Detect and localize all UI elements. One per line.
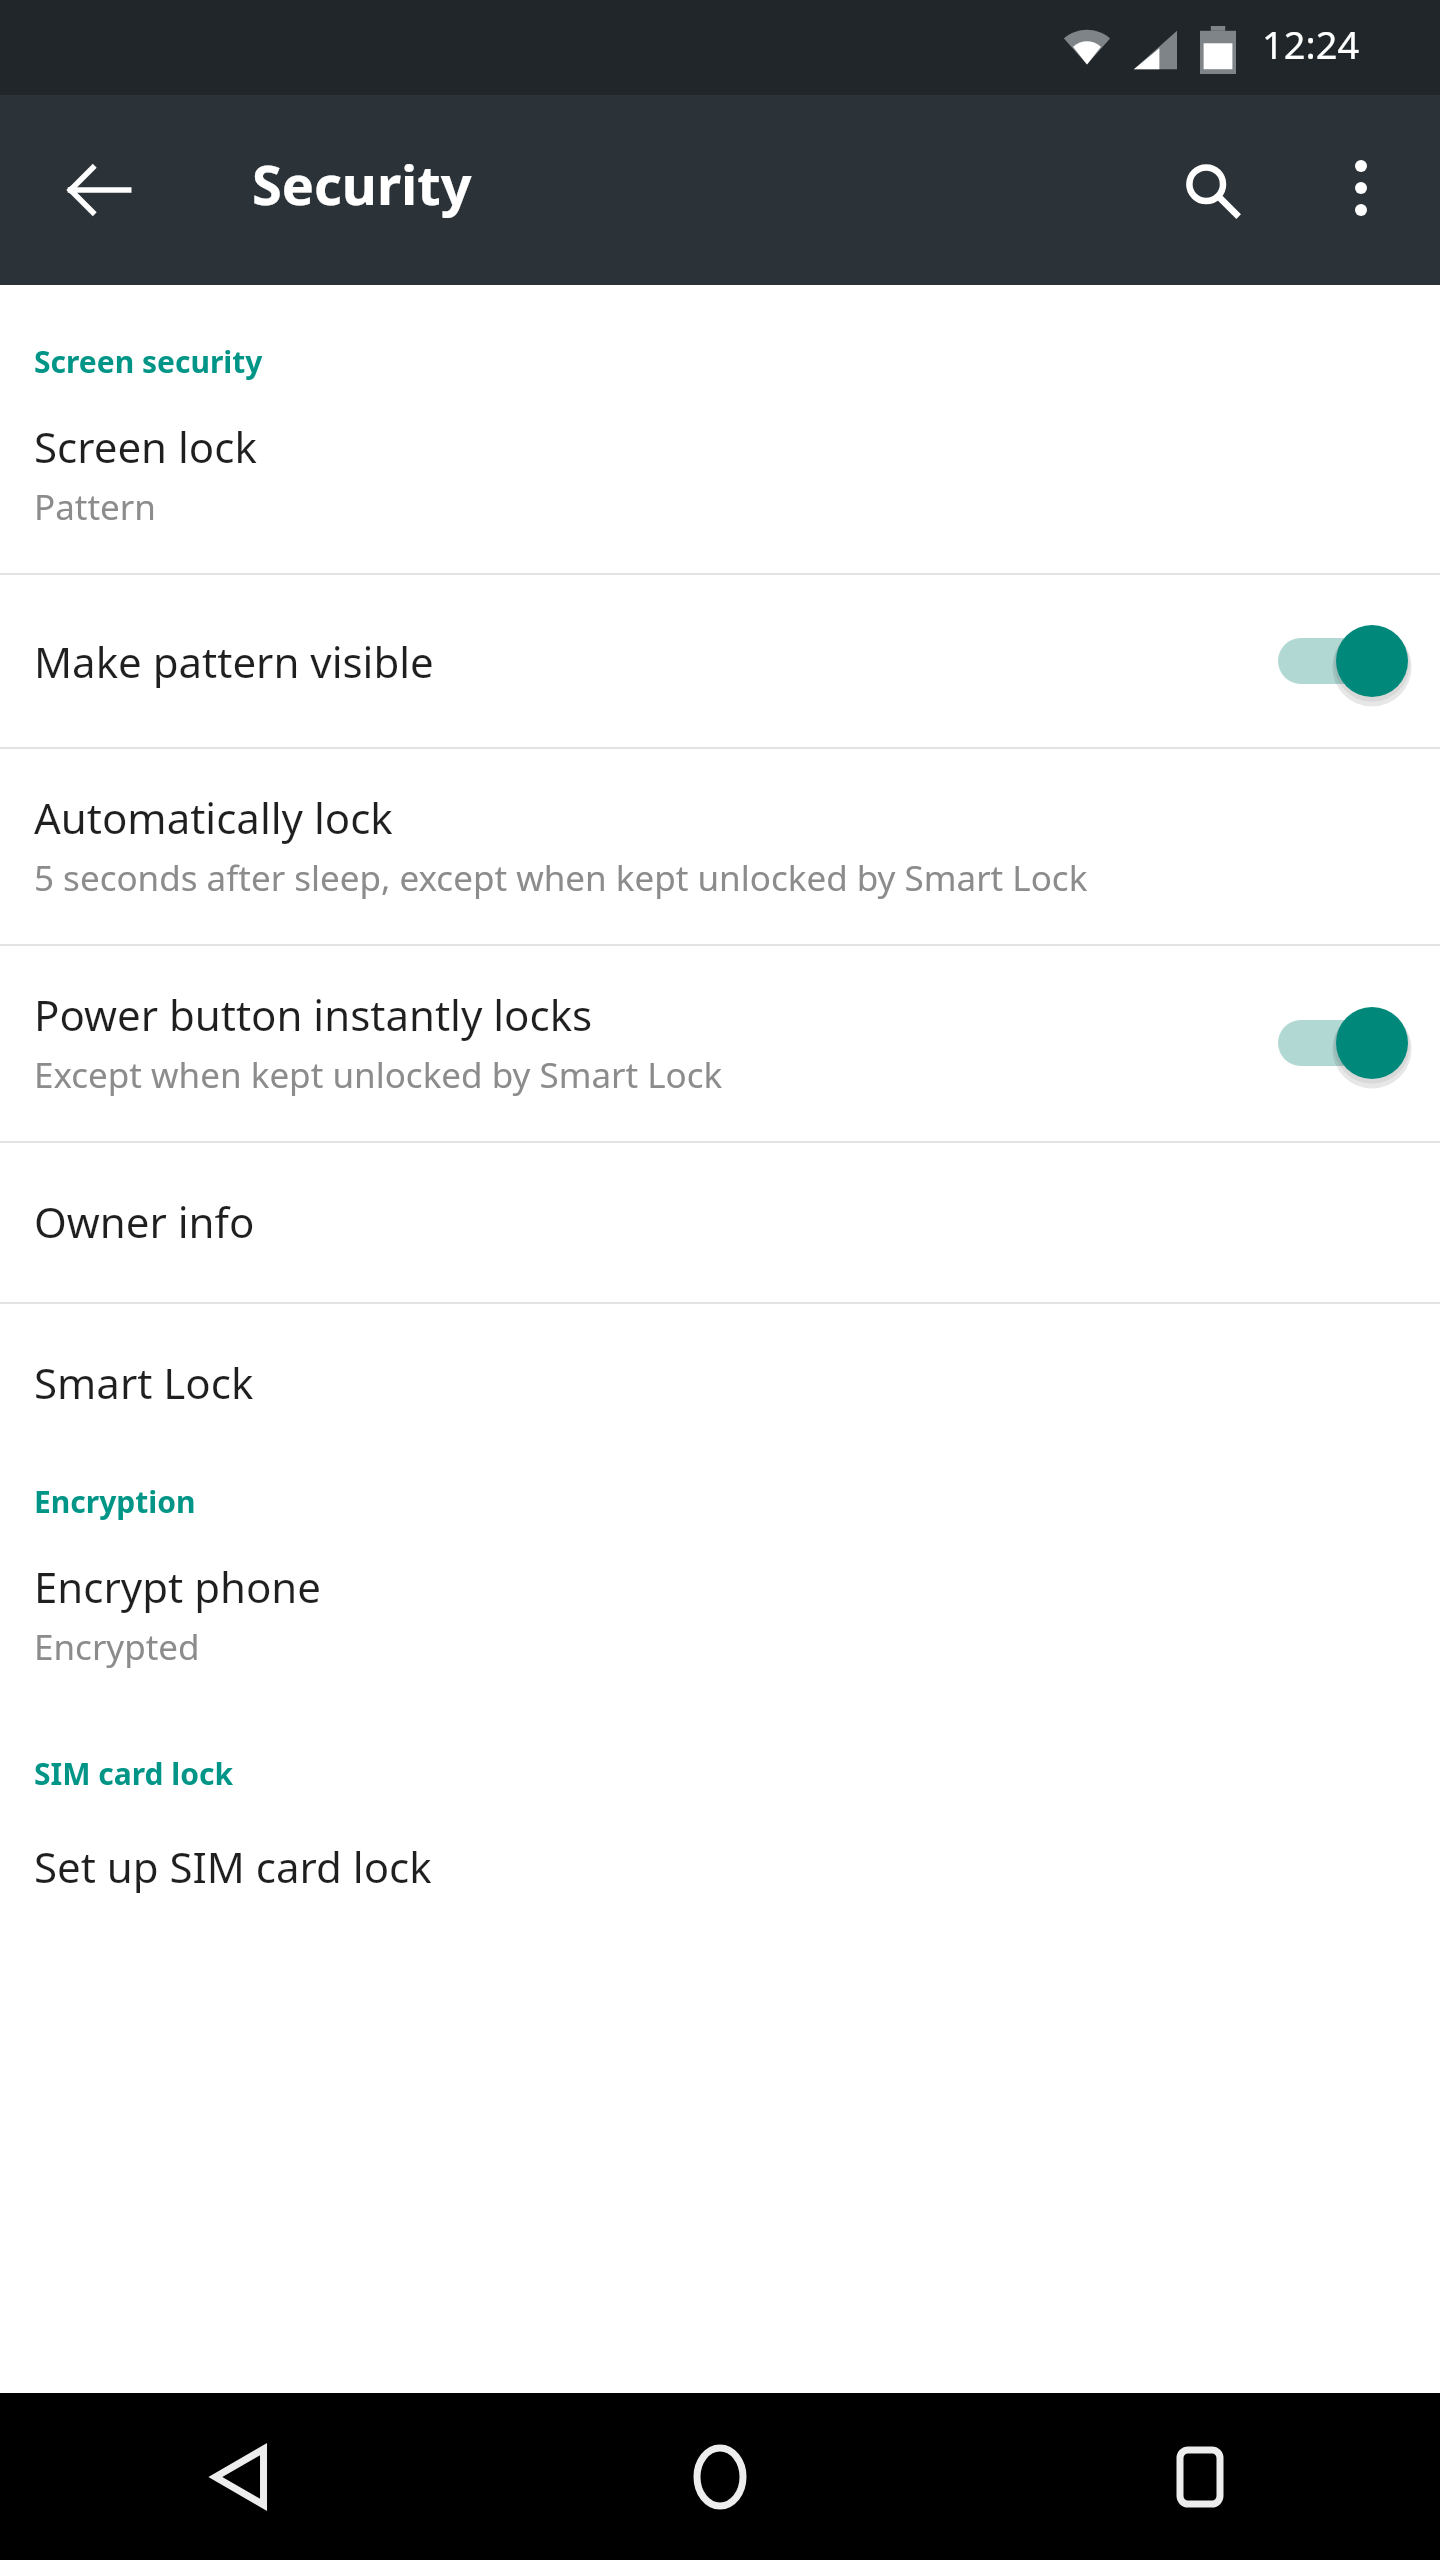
staticText: Encrypt phone — [34, 1558, 321, 1615]
button[interactable]: Set up SIM card lock — [0, 1814, 1440, 1935]
staticText: Set up SIM card lock — [34, 1838, 432, 1895]
staticText: Screen security — [34, 341, 263, 382]
staticText: Encryption — [34, 1481, 196, 1522]
other: On — [1278, 621, 1410, 701]
button[interactable]: Make pattern visible — [0, 575, 1440, 747]
button[interactable]: Automatically lock — [0, 749, 1440, 944]
button[interactable]: Owner info — [0, 1143, 1440, 1302]
button[interactable]: Back — [0, 2393, 480, 2560]
staticText: Security — [252, 147, 472, 221]
staticText: Owner info — [34, 1193, 255, 1250]
button[interactable]: Navigate up — [44, 135, 154, 245]
button[interactable]: Power button instantly locks — [0, 946, 1440, 1141]
button[interactable]: Search — [1152, 130, 1272, 250]
staticText: 12:24 — [1262, 18, 1360, 70]
staticText: 5 seconds after sleep, except when kept … — [34, 854, 1088, 902]
button[interactable]: More options — [1306, 133, 1416, 243]
button[interactable]: Encrypt phone — [0, 1542, 1440, 1711]
staticText: Automatically lock — [34, 789, 393, 846]
staticText: Encrypted — [34, 1623, 200, 1671]
button[interactable]: Screen lock — [0, 402, 1440, 573]
staticText: Smart Lock — [34, 1354, 254, 1411]
button[interactable]: Recent apps — [960, 2393, 1440, 2560]
staticText: Except when kept unlocked by Smart Lock — [34, 1051, 723, 1099]
button[interactable]: Smart Lock — [0, 1304, 1440, 1437]
staticText: Screen lock — [34, 418, 257, 475]
button[interactable]: Home — [480, 2393, 960, 2560]
staticText: Pattern — [34, 483, 156, 531]
staticText: SIM card lock — [34, 1753, 234, 1794]
other: On — [1278, 1003, 1410, 1083]
staticText: Make pattern visible — [34, 633, 434, 690]
staticText: Power button instantly locks — [34, 986, 593, 1043]
